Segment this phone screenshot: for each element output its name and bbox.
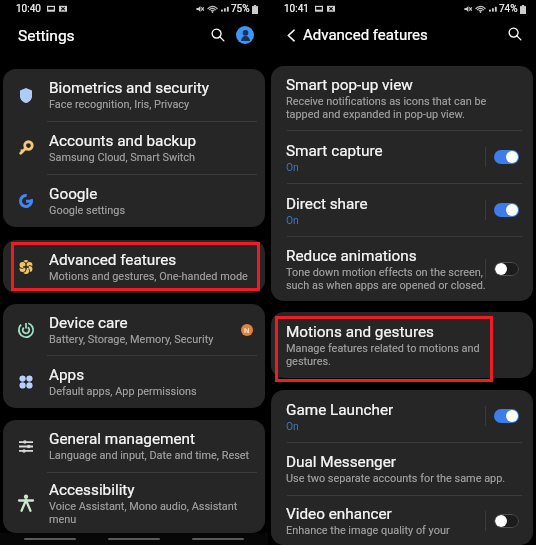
staticText: Battery, Storage, Memory, Security	[49, 333, 214, 346]
button[interactable]: Biometrics and security	[3, 69, 265, 121]
button[interactable]: Apps	[3, 356, 265, 408]
staticText: Direct share	[286, 195, 368, 213]
staticText: Google settings	[49, 204, 126, 217]
staticText: On	[286, 161, 299, 173]
staticText: Tone down motion effects on the screen, …	[286, 266, 490, 291]
staticText: Language and input, Date and time, Reset	[49, 449, 250, 462]
button[interactable]: Navigation button	[108, 538, 160, 540]
staticText: Dual Messenger	[286, 453, 397, 471]
button[interactable]: Device care	[3, 304, 265, 355]
staticText: Smart capture	[286, 142, 383, 160]
staticText: Samsung Cloud, Smart Switch	[49, 151, 196, 164]
staticText: Reduce animations	[286, 247, 417, 265]
button[interactable]: Search	[206, 23, 230, 47]
button[interactable]: Accessibility	[3, 473, 265, 533]
button[interactable]: Motions and gestures	[271, 312, 533, 378]
staticText: General management	[49, 430, 195, 448]
staticText: On	[286, 214, 299, 226]
button[interactable]: Video enhancer	[271, 496, 533, 545]
staticText: Advanced features	[303, 26, 428, 44]
staticText: 75%	[231, 3, 250, 15]
button[interactable]: Account	[236, 26, 254, 44]
button[interactable]: Game Launcher	[271, 390, 533, 442]
button[interactable]: Toggle on	[494, 409, 519, 423]
button[interactable]: Reduce animations	[271, 237, 533, 301]
staticText: 74%	[499, 3, 518, 15]
staticText: Game Launcher	[286, 401, 394, 419]
button[interactable]: Direct share	[271, 184, 533, 236]
button[interactable]: Smart capture	[271, 131, 533, 183]
staticText: Accounts and backup	[49, 132, 197, 150]
staticText: Motions and gestures	[286, 323, 434, 341]
staticText: Motions and gestures, One-handed mode	[49, 270, 248, 283]
staticText: Smart pop-up view	[286, 76, 413, 94]
staticText: Receive notifications as icons that can …	[286, 95, 488, 120]
staticText: Default apps, App permissions	[49, 385, 197, 398]
staticText: Apps	[49, 366, 85, 384]
button[interactable]: Advanced features	[3, 240, 265, 293]
staticText: Settings	[18, 27, 75, 45]
staticText: Manage features related to motions and g…	[286, 342, 487, 367]
staticText: Voice Assistant, Mono audio, Assistant m…	[49, 500, 253, 525]
button[interactable]: General management	[3, 420, 265, 472]
button[interactable]: Toggle on	[494, 203, 519, 217]
staticText: Enhance the image quality of your	[286, 524, 450, 537]
button[interactable]: Navigation button	[192, 538, 244, 540]
staticText: Device care	[49, 314, 128, 332]
button[interactable]: Back	[280, 24, 302, 46]
button[interactable]: Toggle on	[494, 150, 519, 164]
staticText: N	[244, 326, 250, 335]
staticText: Video enhancer	[286, 505, 392, 523]
staticText: Biometrics and security	[49, 79, 209, 97]
button[interactable]: Dual Messenger	[271, 443, 533, 495]
button[interactable]: Toggle off	[494, 514, 519, 528]
staticText: Google	[49, 185, 98, 203]
staticText: Use two separate accounts for the same a…	[286, 472, 506, 485]
staticText: 10:41	[284, 3, 309, 15]
button[interactable]: Google	[3, 175, 265, 227]
button[interactable]: Accounts and backup	[3, 122, 265, 174]
staticText: Face recognition, Iris, Privacy	[49, 98, 190, 111]
button[interactable]: Navigation button	[24, 538, 76, 540]
staticText: Accessibility	[49, 481, 135, 499]
staticText: On	[286, 420, 299, 432]
staticText: 10:40	[16, 3, 41, 15]
button[interactable]: Smart pop-up view	[271, 66, 533, 130]
staticText: Advanced features	[49, 251, 177, 269]
button[interactable]: Search	[503, 22, 527, 46]
button[interactable]: Toggle off	[494, 262, 519, 276]
